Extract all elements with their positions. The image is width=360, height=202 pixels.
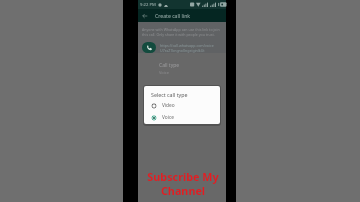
staticText: Create call link (155, 12, 191, 19)
staticText: 9:22 PM (140, 2, 156, 8)
button[interactable]: Back (140, 11, 149, 20)
button[interactable]: Video (144, 101, 220, 110)
staticText: Video (162, 102, 175, 109)
button[interactable]: Call type (138, 61, 226, 76)
staticText: Call type (159, 62, 180, 69)
staticText: Anyone with WhatsApp can use this link t… (142, 27, 220, 37)
staticText: Voice (162, 114, 174, 121)
staticText: Subscribe My Channel (118, 169, 248, 198)
staticText: https://call.whatsapp.com/voice U7ssZ1kn… (160, 43, 214, 53)
button[interactable]: Voice (144, 113, 220, 122)
staticText: Voice (159, 70, 169, 75)
staticText: Select call type (151, 91, 188, 98)
